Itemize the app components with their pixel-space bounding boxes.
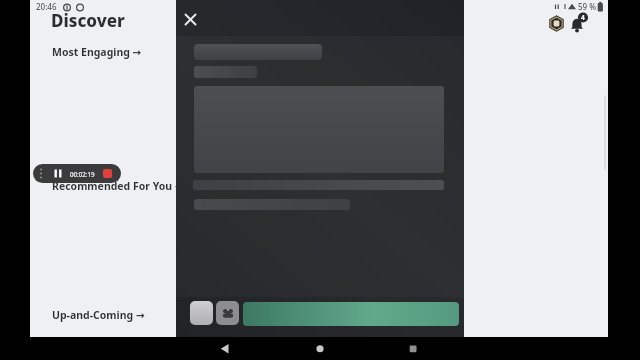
staticText: 59 % bbox=[578, 1, 597, 12]
staticText: 20:46 bbox=[36, 1, 57, 12]
staticText: Up-and-Coming → bbox=[52, 308, 145, 322]
staticText: 00:02:19 bbox=[70, 170, 95, 178]
button[interactable]: 00:02:19 bbox=[33, 164, 121, 183]
staticText: Recommended For You → bbox=[52, 179, 184, 193]
button[interactable] bbox=[190, 301, 213, 325]
staticText: Discover bbox=[51, 9, 125, 32]
button[interactable] bbox=[243, 302, 459, 326]
button[interactable] bbox=[180, 9, 200, 29]
staticText: 4 bbox=[581, 13, 585, 22]
button[interactable] bbox=[547, 14, 593, 34]
staticText: Most Engaging → bbox=[52, 45, 142, 59]
button[interactable] bbox=[216, 301, 239, 325]
